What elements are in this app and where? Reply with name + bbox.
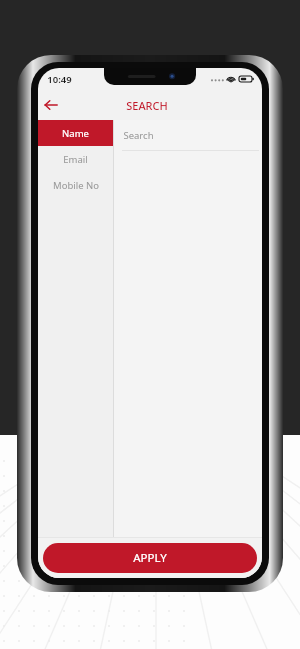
button[interactable]: Back [38, 92, 64, 118]
staticText: Name [62, 127, 89, 140]
staticText: 10:49 [47, 73, 72, 86]
button[interactable]: Name [38, 120, 113, 146]
staticText: Mobile No [53, 179, 99, 192]
staticText: Search [123, 129, 154, 142]
button[interactable]: APPLY [43, 543, 257, 573]
button[interactable]: Search [114, 120, 262, 150]
button[interactable]: Email [38, 146, 113, 172]
staticText: Email [63, 153, 88, 166]
staticText: APPLY [133, 550, 167, 566]
button[interactable]: Mobile No [38, 172, 113, 198]
staticText: SEARCH [126, 98, 168, 113]
